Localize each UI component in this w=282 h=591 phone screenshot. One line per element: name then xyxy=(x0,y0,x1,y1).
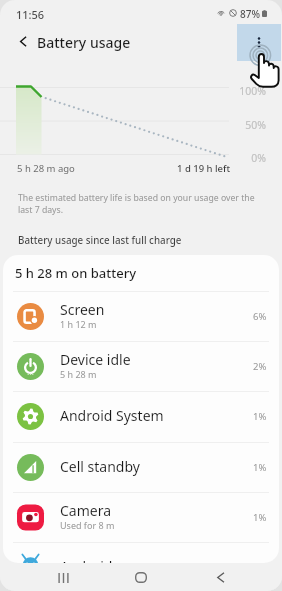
staticText: Camera xyxy=(60,501,112,520)
staticText: 1% xyxy=(253,410,267,423)
staticText: last 7 days. xyxy=(18,204,64,216)
button[interactable]: More options xyxy=(237,24,281,61)
staticText: 6% xyxy=(253,310,267,323)
staticText: The estimated battery life is based on y… xyxy=(18,192,255,204)
button[interactable]: Camera xyxy=(3,493,279,542)
staticText: 5 h 28 m xyxy=(60,368,97,380)
staticText: 1 h 12 m xyxy=(60,318,97,330)
staticText: 1 d 19 h left xyxy=(177,162,231,175)
staticText: 2% xyxy=(253,360,267,373)
button[interactable]: Android xyxy=(3,543,279,563)
staticText: Device idle xyxy=(60,350,131,369)
button[interactable]: Android System xyxy=(3,392,279,441)
staticText: 1% xyxy=(253,511,267,524)
staticText: Android xyxy=(60,557,113,563)
staticText: Used for 8 m xyxy=(60,519,115,531)
button[interactable]: Back xyxy=(8,26,38,56)
staticText: Battery usage since last full charge xyxy=(18,234,182,247)
staticText: 0% xyxy=(226,151,266,165)
button[interactable]: Recents xyxy=(48,564,78,591)
button[interactable]: Home xyxy=(126,564,156,591)
staticText: 1% xyxy=(253,461,267,474)
staticText: 50% xyxy=(226,118,266,132)
staticText: Android System xyxy=(60,406,164,425)
staticText: Battery usage xyxy=(37,33,131,52)
button[interactable]: Cell standby xyxy=(3,443,279,492)
button[interactable]: Device idle xyxy=(3,342,279,391)
staticText: 87% xyxy=(240,7,260,21)
staticText: Cell standby xyxy=(60,457,140,476)
staticText: 5 h 28 m on battery xyxy=(15,264,137,282)
staticText: 11:56 xyxy=(16,7,45,22)
staticText: Screen xyxy=(60,300,105,319)
button[interactable]: Back xyxy=(205,564,235,591)
button[interactable]: Screen xyxy=(3,292,279,341)
staticText: 5 h 28 m ago xyxy=(17,162,75,175)
staticText: 100% xyxy=(226,84,266,98)
